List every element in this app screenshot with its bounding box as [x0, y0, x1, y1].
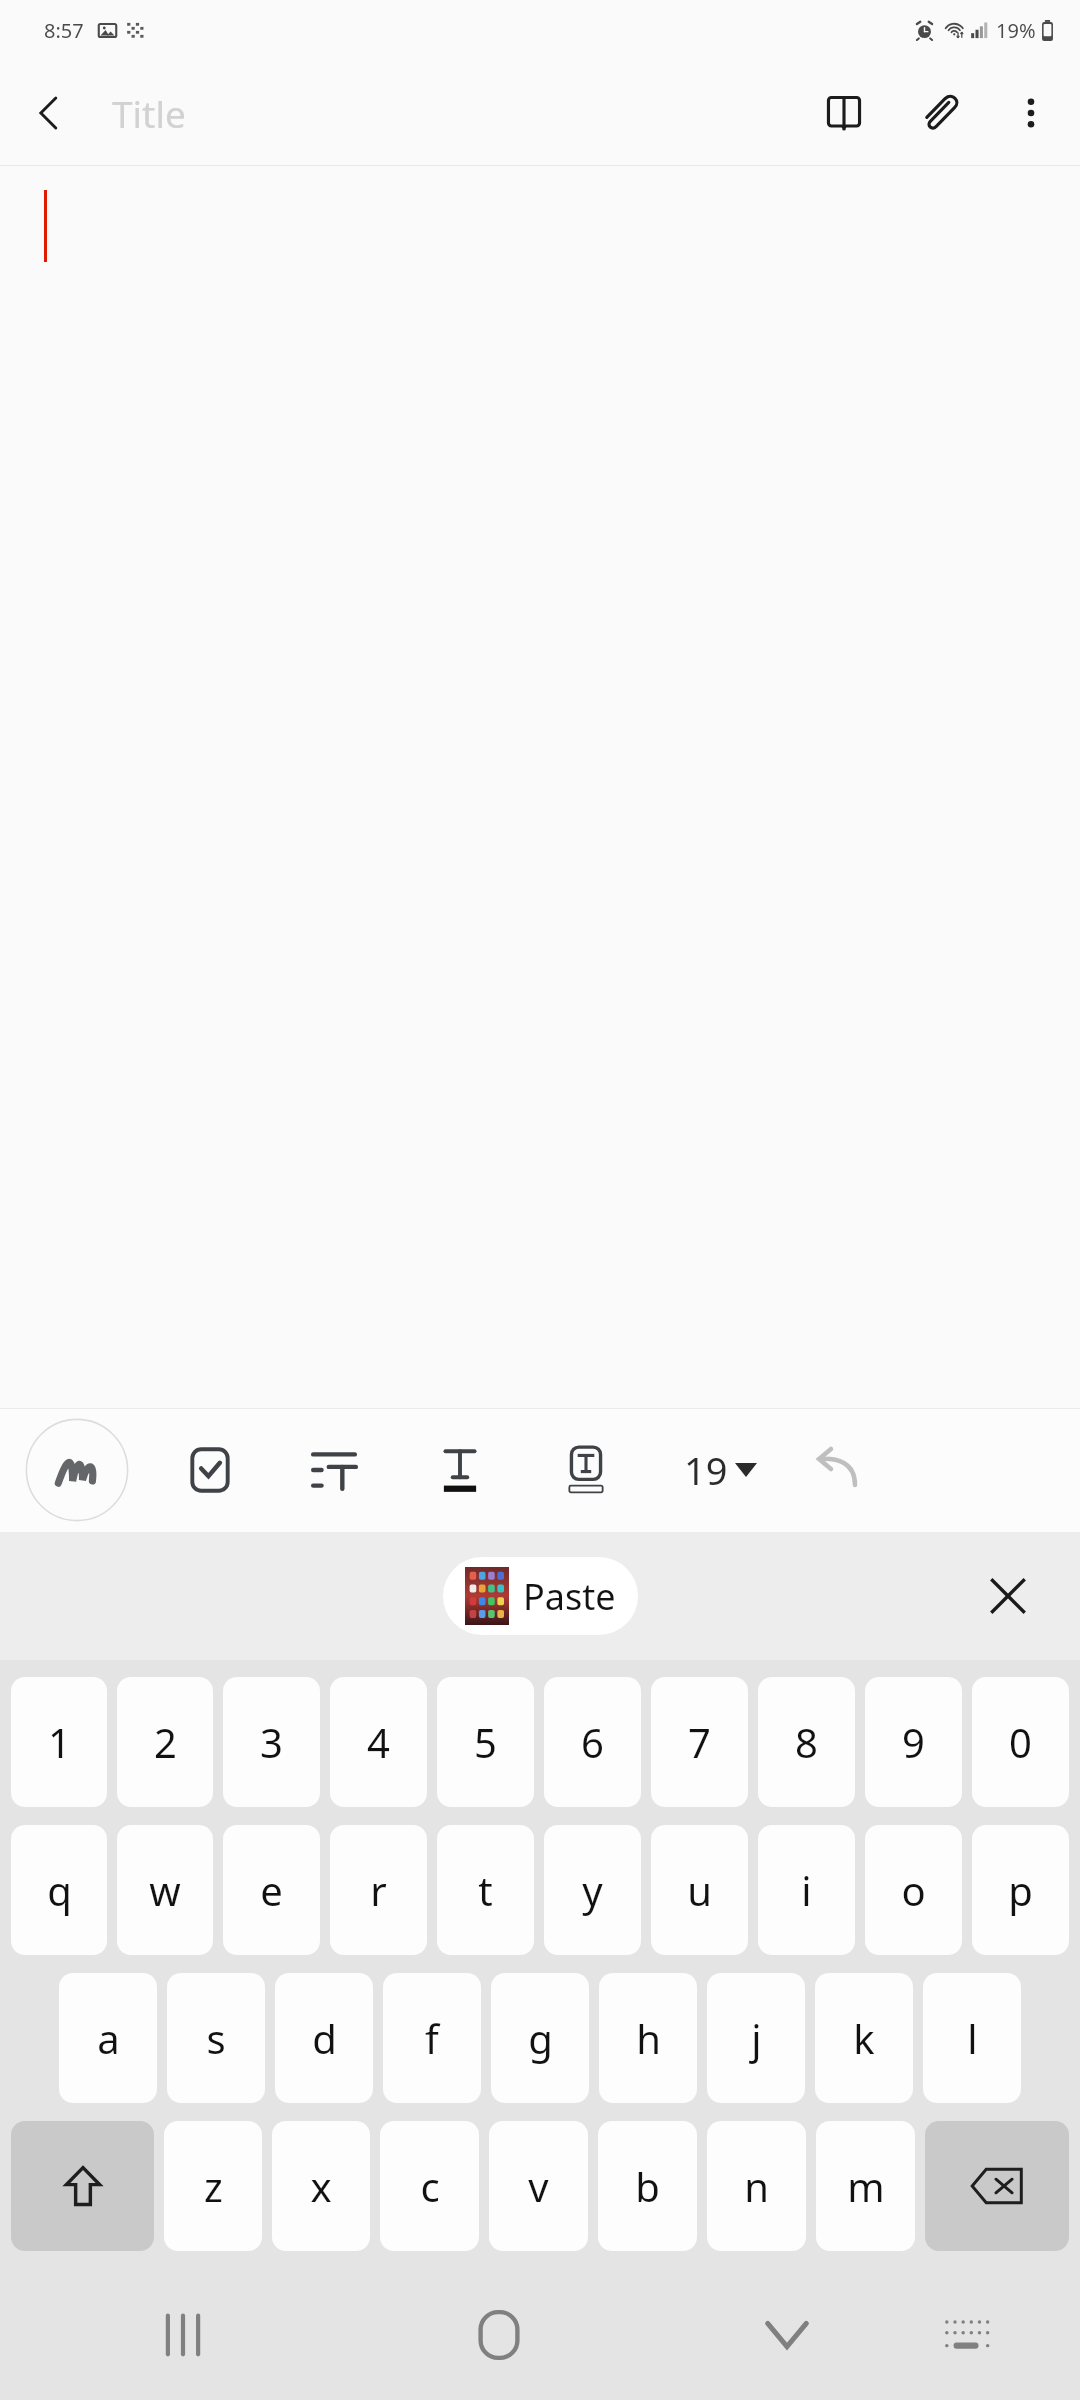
button[interactable]: a	[59, 1973, 157, 2103]
staticText: 19	[684, 1444, 728, 1496]
staticText: s	[206, 2011, 226, 2065]
button[interactable]: u	[651, 1825, 748, 1955]
button[interactable]: Recents	[128, 2280, 238, 2390]
button[interactable]: Checklist	[170, 1430, 250, 1510]
button[interactable]: y	[544, 1825, 641, 1955]
staticText: 2	[154, 1715, 177, 1769]
button[interactable]: Text box	[546, 1430, 626, 1510]
button[interactable]: c	[380, 2121, 479, 2251]
staticText: 8:57	[44, 17, 84, 44]
staticText: c	[420, 2159, 440, 2213]
staticText: r	[370, 1863, 387, 1917]
staticText: o	[901, 1863, 926, 1917]
staticText: y	[582, 1863, 603, 1917]
staticText: b	[635, 2159, 660, 2213]
button[interactable]: z	[164, 2121, 262, 2251]
button[interactable]: g	[491, 1973, 589, 2103]
button[interactable]: l	[923, 1973, 1021, 2103]
button[interactable]: Close clipboard	[966, 1554, 1050, 1638]
staticText: 6	[581, 1715, 604, 1769]
button[interactable]: Text style	[420, 1430, 500, 1510]
button[interactable]: Paste	[443, 1557, 638, 1635]
button[interactable]: 5	[437, 1677, 534, 1807]
staticText: g	[528, 2011, 553, 2065]
button[interactable]: More options	[988, 70, 1074, 156]
staticText: 9	[902, 1715, 925, 1769]
button[interactable]: s	[167, 1973, 265, 2103]
staticText: k	[853, 2011, 875, 2065]
button[interactable]: p	[972, 1825, 1069, 1955]
button[interactable]: r	[330, 1825, 427, 1955]
button[interactable]: 3	[223, 1677, 320, 1807]
button[interactable]: k	[815, 1973, 913, 2103]
staticText: q	[47, 1863, 72, 1917]
button[interactable]: h	[599, 1973, 697, 2103]
staticText: z	[204, 2159, 223, 2213]
button[interactable]: Shift	[11, 2121, 154, 2251]
button[interactable]: 19	[666, 1425, 774, 1515]
staticText: 8	[795, 1715, 818, 1769]
staticText: l	[967, 2011, 978, 2065]
button[interactable]: n	[707, 2121, 806, 2251]
staticText: u	[687, 1863, 712, 1917]
staticText: 3	[260, 1715, 283, 1769]
staticText: Title	[112, 88, 186, 138]
button[interactable]: x	[272, 2121, 370, 2251]
staticText: 5	[474, 1715, 497, 1769]
staticText: m	[847, 2159, 885, 2213]
button[interactable]: 7	[651, 1677, 748, 1807]
staticText: Paste	[523, 1572, 616, 1621]
button[interactable]: Back	[0, 64, 98, 162]
staticText: 1	[48, 1715, 71, 1769]
button[interactable]: Hide keyboard	[732, 2280, 842, 2390]
button[interactable]: i	[758, 1825, 855, 1955]
button[interactable]: j	[707, 1973, 805, 2103]
button[interactable]: w	[117, 1825, 213, 1955]
staticText: i	[801, 1863, 812, 1917]
button[interactable]: Home	[444, 2280, 554, 2390]
button[interactable]: Paragraph style	[294, 1430, 374, 1510]
button[interactable]: Backspace	[925, 2121, 1069, 2251]
button[interactable]: 8	[758, 1677, 855, 1807]
staticText: h	[636, 2011, 661, 2065]
staticText: j	[751, 2011, 762, 2065]
button[interactable]: d	[275, 1973, 373, 2103]
button[interactable]: Title	[98, 60, 796, 166]
staticText: w	[149, 1863, 181, 1917]
button[interactable]: t	[437, 1825, 534, 1955]
staticText: n	[744, 2159, 769, 2213]
staticText: p	[1008, 1863, 1033, 1917]
button[interactable]: f	[383, 1973, 481, 2103]
button[interactable]: Attach	[892, 65, 988, 161]
staticText: 19%	[996, 17, 1036, 44]
button[interactable]: e	[223, 1825, 320, 1955]
button[interactable]: Undo	[792, 1425, 882, 1515]
button[interactable]: 0	[972, 1677, 1069, 1807]
staticText: t	[478, 1863, 493, 1917]
button[interactable]: o	[865, 1825, 962, 1955]
button[interactable]: Reading mode	[796, 65, 892, 161]
button[interactable]: Change keyboard	[912, 2280, 1022, 2390]
button[interactable]: b	[598, 2121, 697, 2251]
staticText: 7	[688, 1715, 711, 1769]
staticText: 0	[1009, 1715, 1032, 1769]
button[interactable]: 2	[117, 1677, 213, 1807]
staticText: e	[260, 1863, 283, 1917]
button[interactable]: 4	[330, 1677, 427, 1807]
staticText: f	[425, 2011, 439, 2065]
staticText: 4	[367, 1715, 390, 1769]
button[interactable]: 6	[544, 1677, 641, 1807]
staticText: x	[310, 2159, 332, 2213]
staticText: v	[528, 2159, 549, 2213]
button[interactable]: 1	[11, 1677, 107, 1807]
button[interactable]: Handwriting	[22, 1415, 132, 1525]
staticText: d	[312, 2011, 337, 2065]
button[interactable]: q	[11, 1825, 107, 1955]
staticText: a	[97, 2011, 120, 2065]
button[interactable]: 9	[865, 1677, 962, 1807]
button[interactable]: v	[489, 2121, 588, 2251]
button[interactable]: m	[816, 2121, 915, 2251]
